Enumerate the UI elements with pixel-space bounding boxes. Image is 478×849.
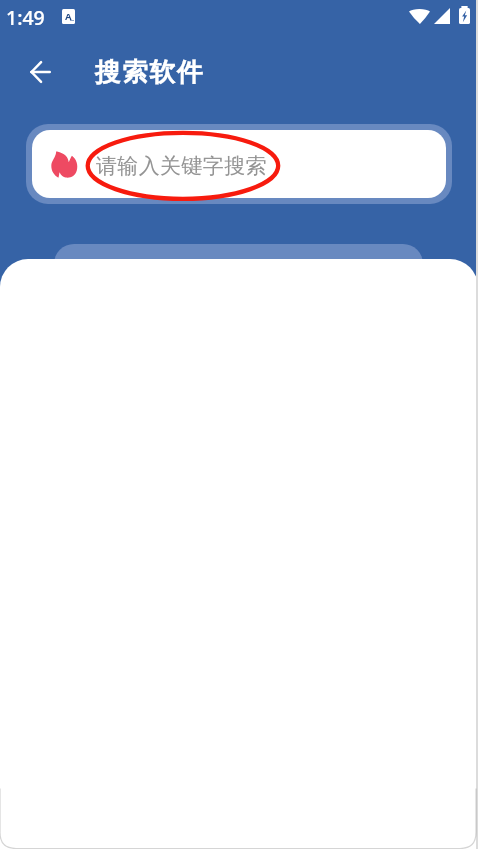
button[interactable] xyxy=(54,244,423,304)
button[interactable]: Back xyxy=(20,52,60,92)
staticText: 请输入关键字搜索 xyxy=(96,153,267,179)
staticText: 1:49 xyxy=(6,4,45,31)
other: Wi-Fi xyxy=(409,8,430,24)
button[interactable]: 请输入关键字搜索 xyxy=(32,130,446,198)
staticText: A xyxy=(65,10,72,23)
staticText: 搜索软件 xyxy=(95,56,204,88)
other: Battery charging xyxy=(459,6,470,24)
other: Mobile signal xyxy=(434,8,450,24)
